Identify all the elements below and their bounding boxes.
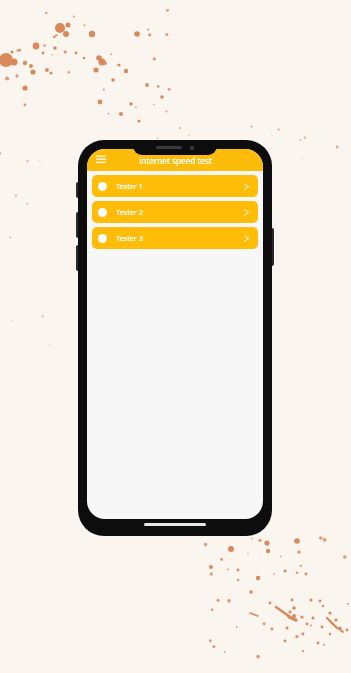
button[interactable]: Tester 1: [92, 175, 258, 197]
staticText: Tester 3: [116, 233, 143, 243]
button[interactable]: Tester 3: [92, 227, 258, 249]
button[interactable]: Open navigation menu: [93, 152, 109, 168]
staticText: Tester 2: [116, 207, 143, 217]
staticText: internet speed test: [139, 155, 212, 166]
staticText: Tester 1: [116, 181, 143, 191]
button[interactable]: Tester 2: [92, 201, 258, 223]
